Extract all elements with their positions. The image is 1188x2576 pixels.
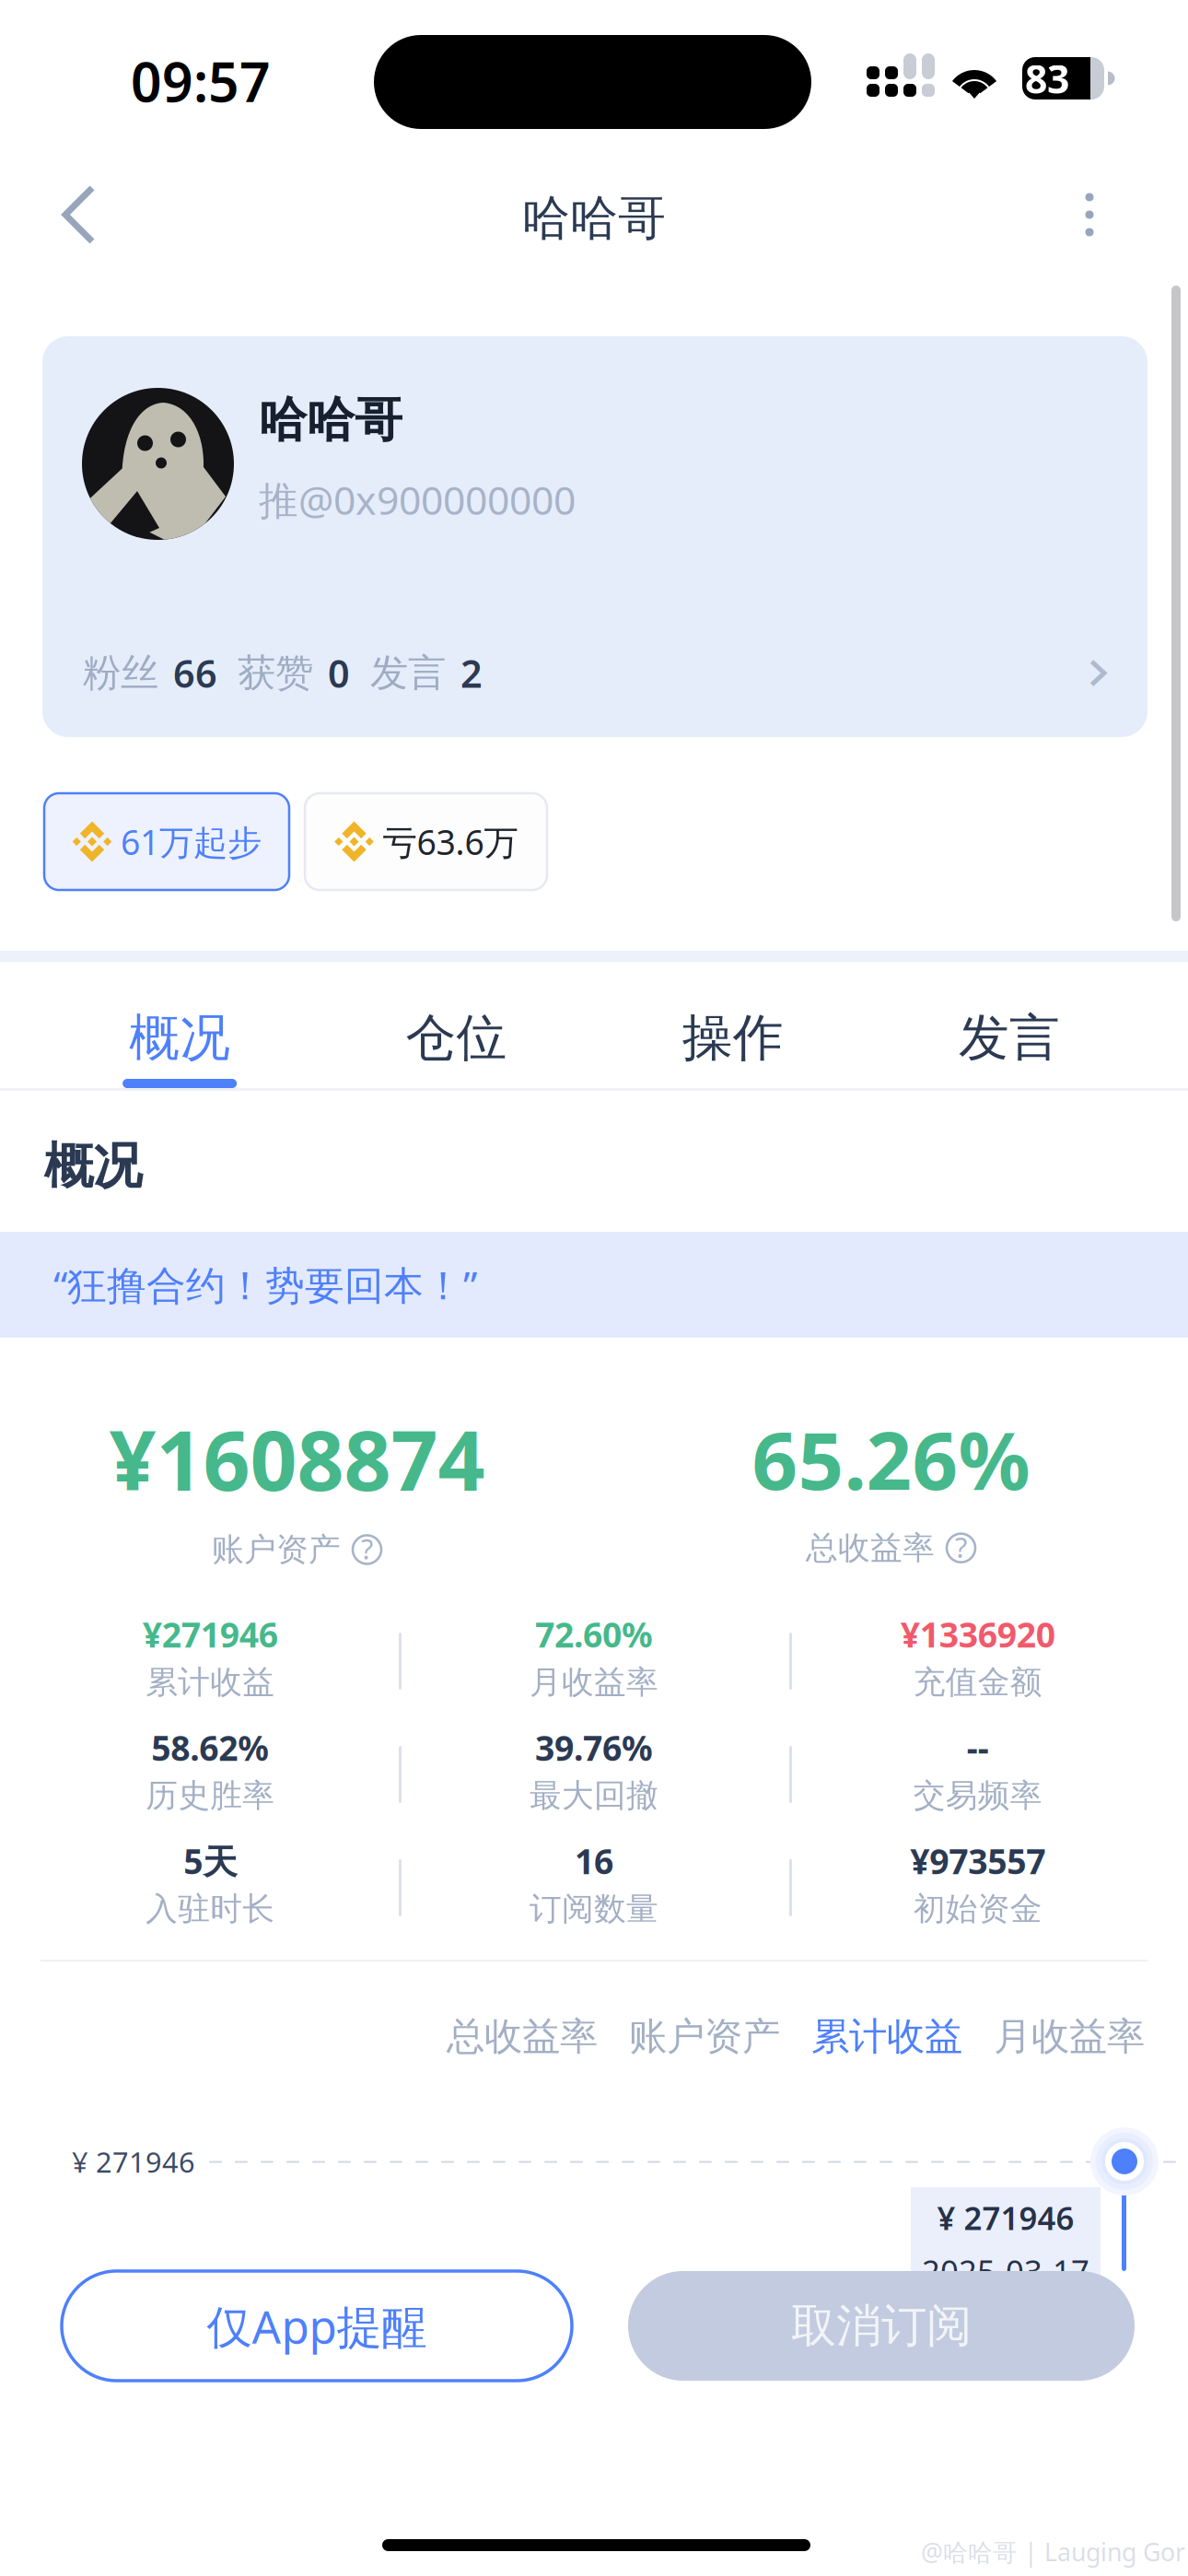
- staticText: 月收益率: [530, 1663, 658, 1702]
- button[interactable]: 哈哈哥: [42, 336, 1147, 737]
- staticText: 发言: [959, 1007, 1060, 1069]
- staticText: ¥ 271946: [937, 2196, 1074, 2239]
- button[interactable]: 概况: [41, 973, 318, 1100]
- button[interactable]: 取消订阅: [628, 2271, 1135, 2381]
- staticText: 月收益率: [994, 2013, 1145, 2060]
- staticText: ¥1336920: [900, 1611, 1055, 1657]
- staticText: 交易频率: [913, 1776, 1042, 1815]
- button[interactable]: More: [1030, 171, 1149, 258]
- staticText: 历史胜率: [146, 1776, 275, 1815]
- staticText: ?: [361, 1530, 373, 1567]
- staticText: ¥1608874: [109, 1404, 485, 1513]
- staticText: 累计收益: [811, 2013, 962, 2060]
- staticText: 入驻时长: [146, 1889, 275, 1928]
- staticText: 取消订阅: [791, 2298, 972, 2354]
- staticText: 65.26%: [752, 1406, 1030, 1512]
- button[interactable]: 亏63.6万: [305, 793, 547, 890]
- staticText: 累计收益: [146, 1663, 275, 1702]
- staticText: “狂撸合约！势要回本！”: [53, 1259, 477, 1311]
- staticText: 操作: [682, 1007, 783, 1069]
- button[interactable]: 61万起步: [44, 793, 289, 890]
- staticText: 哈哈哥: [259, 391, 402, 450]
- staticText: ?: [955, 1528, 967, 1566]
- staticText: 5天: [184, 1838, 237, 1884]
- button[interactable]: 账户资产: [629, 2013, 780, 2060]
- staticText: 最大回撤: [530, 1776, 658, 1815]
- button[interactable]: 月收益率: [994, 2013, 1145, 2060]
- staticText: 39.76%: [535, 1725, 653, 1770]
- staticText: @哈哈哥 | Lauging Gor: [921, 2535, 1185, 2568]
- staticText: 哈哈哥: [522, 189, 666, 248]
- staticText: ¥973557: [910, 1838, 1045, 1884]
- staticText: 2: [460, 648, 483, 698]
- staticText: 83: [1025, 52, 1069, 104]
- button[interactable]: 总收益率: [447, 2013, 598, 2060]
- staticText: 66: [173, 648, 217, 698]
- button[interactable]: 仓位: [318, 973, 594, 1100]
- staticText: 58.62%: [151, 1725, 269, 1770]
- button[interactable]: 发言: [871, 973, 1147, 1100]
- staticText: 61万起步: [121, 819, 262, 864]
- staticText: 充值金额: [913, 1663, 1042, 1702]
- staticText: 账户资产: [629, 2013, 780, 2060]
- staticText: --: [967, 1725, 989, 1770]
- staticText: 总收益率: [806, 1528, 935, 1568]
- staticText: ¥ 271946: [72, 2143, 195, 2180]
- staticText: 概况: [129, 1007, 230, 1069]
- staticText: 概况: [44, 1136, 142, 1196]
- button[interactable]: 操作: [594, 973, 871, 1100]
- staticText: 发言: [370, 650, 446, 697]
- button[interactable]: 仅App提醒: [62, 2271, 572, 2381]
- staticText: 粉丝: [83, 650, 158, 697]
- staticText: 推@0x900000000: [259, 473, 576, 526]
- staticText: 总收益率: [447, 2013, 598, 2060]
- staticText: 72.60%: [535, 1611, 653, 1657]
- staticText: 09:57: [131, 45, 271, 117]
- staticText: 仓位: [406, 1007, 507, 1069]
- staticText: 2025-03-17: [922, 2250, 1089, 2292]
- staticText: 账户资产: [212, 1530, 341, 1569]
- staticText: 初始资金: [913, 1889, 1042, 1928]
- staticText: 订阅数量: [530, 1889, 658, 1928]
- button[interactable]: 累计收益: [811, 2013, 962, 2060]
- staticText: 获赞: [238, 650, 313, 697]
- button[interactable]: Back: [0, 171, 158, 258]
- staticText: ¥271946: [143, 1611, 278, 1657]
- staticText: 0: [328, 648, 350, 698]
- staticText: 亏63.6万: [383, 819, 518, 864]
- staticText: 仅App提醒: [207, 2296, 427, 2356]
- staticText: 16: [575, 1838, 613, 1884]
